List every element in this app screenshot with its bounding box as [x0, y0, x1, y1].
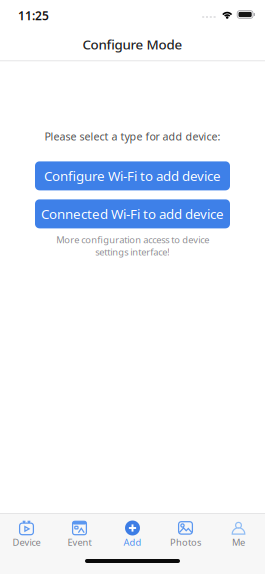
- staticText: Configure Wi-Fi to add device: [44, 167, 221, 185]
- staticText: Photos: [170, 536, 201, 548]
- staticText: Connected Wi-Fi to add device: [41, 205, 224, 223]
- button[interactable]: Event: [53, 514, 106, 548]
- button[interactable]: Me: [212, 514, 265, 548]
- button[interactable]: Photos: [159, 514, 212, 548]
- staticText: Configure Mode: [82, 35, 182, 53]
- staticText: Please select a type for add device:: [44, 129, 220, 143]
- staticText: More configuration access to device sett…: [56, 233, 209, 258]
- button[interactable]: Add: [106, 514, 159, 548]
- button[interactable]: Connected Wi-Fi to add device: [35, 199, 230, 228]
- staticText: Add: [123, 536, 141, 548]
- button[interactable]: Device: [0, 514, 53, 548]
- button[interactable]: Configure Wi-Fi to add device: [35, 161, 230, 190]
- staticText: Event: [67, 536, 91, 548]
- staticText: Me: [232, 536, 245, 548]
- staticText: Device: [12, 536, 40, 548]
- staticText: 11:25: [18, 7, 49, 23]
